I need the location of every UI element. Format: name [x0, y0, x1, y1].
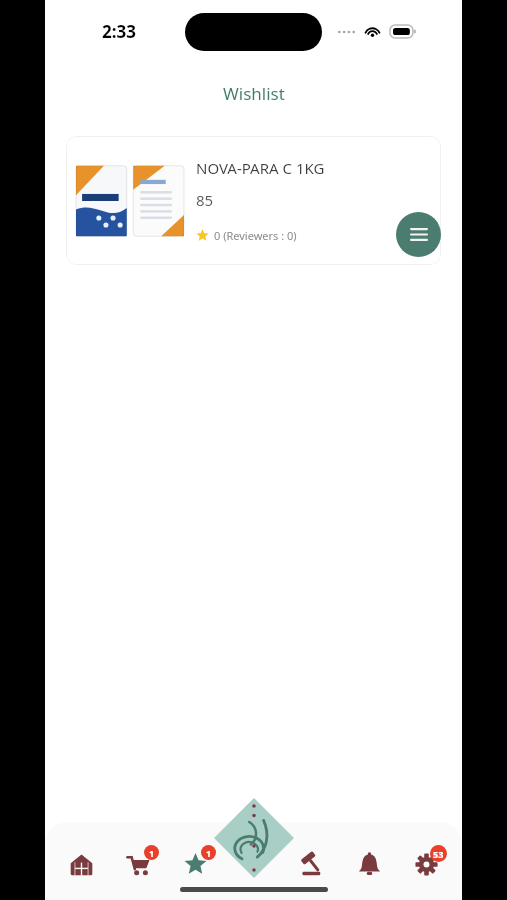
- staticText: 1: [149, 847, 155, 859]
- button[interactable]: Menu: [396, 212, 441, 257]
- button[interactable]: Home logo: [214, 798, 294, 878]
- staticText: 53: [433, 848, 444, 860]
- staticText: 0 (Reviewers : 0): [214, 228, 297, 243]
- button[interactable]: Home: [60, 844, 102, 884]
- button[interactable]: NOVA-PARA C 1KG: [66, 136, 441, 265]
- staticText: NOVA-PARA C 1KG: [196, 158, 325, 178]
- button[interactable]: Settings: [405, 844, 447, 884]
- button[interactable]: Auctions: [291, 844, 333, 884]
- staticText: 85: [196, 190, 214, 210]
- button[interactable]: Cart: [117, 844, 159, 884]
- staticText: 2:33: [102, 20, 136, 43]
- staticText: Wishlist: [223, 82, 285, 105]
- button[interactable]: Notifications: [348, 844, 390, 884]
- staticText: 1: [206, 847, 212, 859]
- button[interactable]: Wishlist: [174, 844, 216, 884]
